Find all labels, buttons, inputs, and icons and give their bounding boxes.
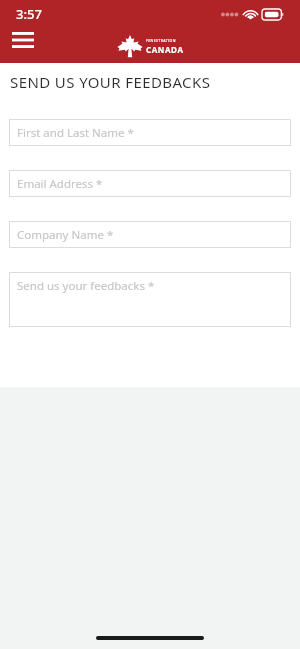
button[interactable]: First and Last Name * [9, 119, 291, 146]
staticText: First and Last Name * [17, 125, 134, 141]
staticText: Send us your feedbacks * [17, 278, 155, 294]
button[interactable]: Open navigation menu [6, 23, 40, 57]
button[interactable]: Fenestration Canada home [117, 34, 184, 58]
staticText: Company Name * [17, 227, 114, 243]
staticText: 3:57 [16, 5, 42, 23]
staticText: CANADA [146, 44, 184, 55]
button[interactable]: Company Name * [9, 221, 291, 248]
staticText: FENESTRATION [146, 38, 176, 43]
button[interactable]: Email Address * [9, 170, 291, 197]
button[interactable]: Send us your feedbacks * [9, 272, 291, 327]
staticText: SEND US YOUR FEEDBACKS [10, 72, 211, 92]
staticText: Email Address * [17, 176, 103, 192]
